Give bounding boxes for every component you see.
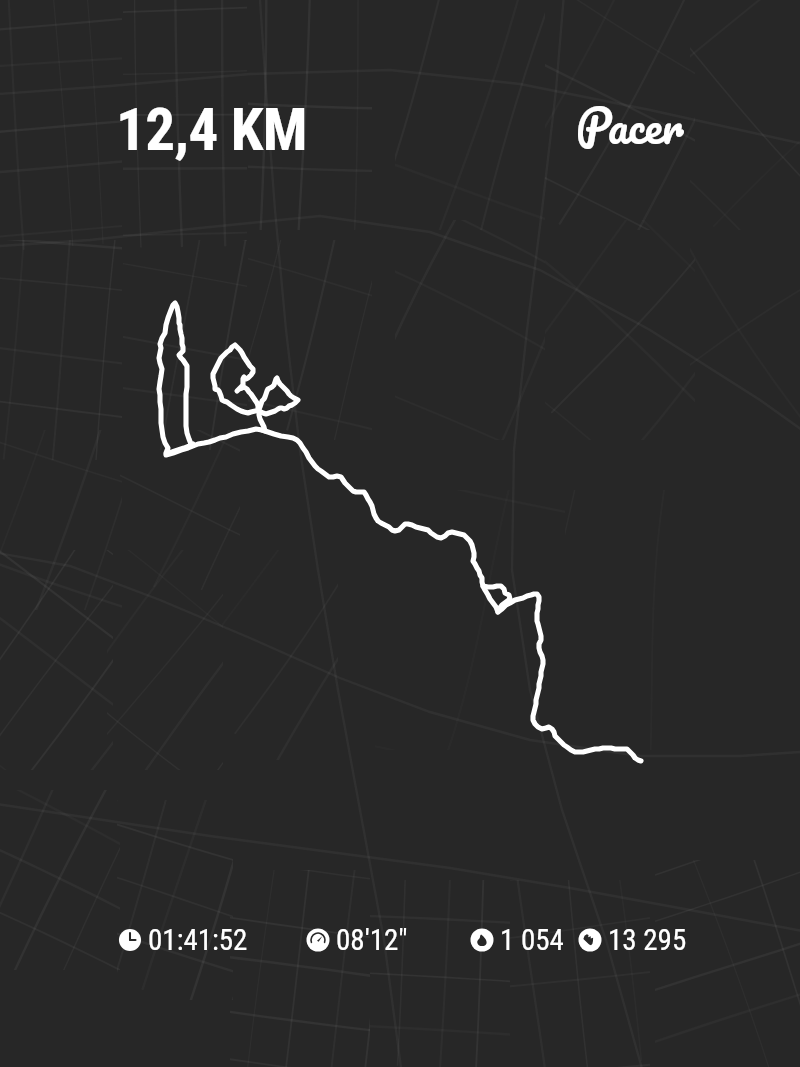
staticText: 12,4 KM [116,95,307,164]
staticText: 13 295 [608,923,687,957]
staticText: 01:41:52 [148,923,248,957]
staticText: 1 054 [500,923,564,957]
button[interactable]: Calories [470,923,564,957]
staticText: Pacer [576,87,684,164]
button[interactable]: Average pace [306,923,408,957]
staticText: 08'12" [336,923,408,957]
button[interactable]: Duration [118,923,248,957]
button[interactable]: Steps [578,923,687,957]
